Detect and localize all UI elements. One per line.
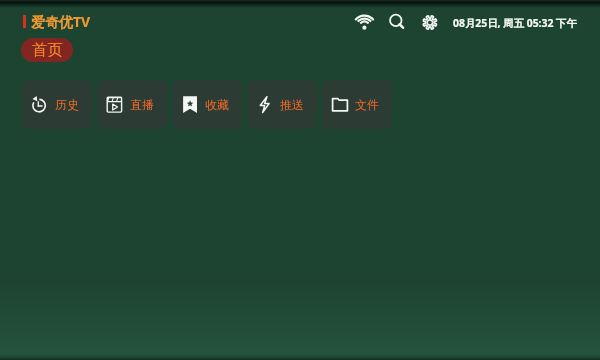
button[interactable]: Wi-Fi: [350, 10, 377, 34]
button[interactable]: 首页: [21, 38, 73, 62]
button[interactable]: 推送: [247, 80, 317, 129]
button[interactable]: 历史: [22, 80, 92, 129]
button[interactable]: 直播: [97, 80, 167, 129]
button[interactable]: Settings: [418, 8, 442, 32]
button[interactable]: Search: [384, 8, 408, 32]
staticText: 历史: [55, 97, 79, 112]
button[interactable]: 收藏: [172, 80, 242, 129]
staticText: 直播: [130, 97, 154, 112]
button[interactable]: 爱奇优TV: [23, 12, 91, 31]
staticText: 爱奇优TV: [31, 12, 91, 31]
staticText: 首页: [32, 40, 63, 60]
button[interactable]: 文件: [322, 80, 392, 129]
staticText: 08月25日, 周五 05:32 下午: [453, 16, 577, 30]
staticText: 推送: [280, 97, 304, 112]
staticText: 文件: [355, 97, 379, 112]
staticText: 收藏: [205, 97, 229, 112]
